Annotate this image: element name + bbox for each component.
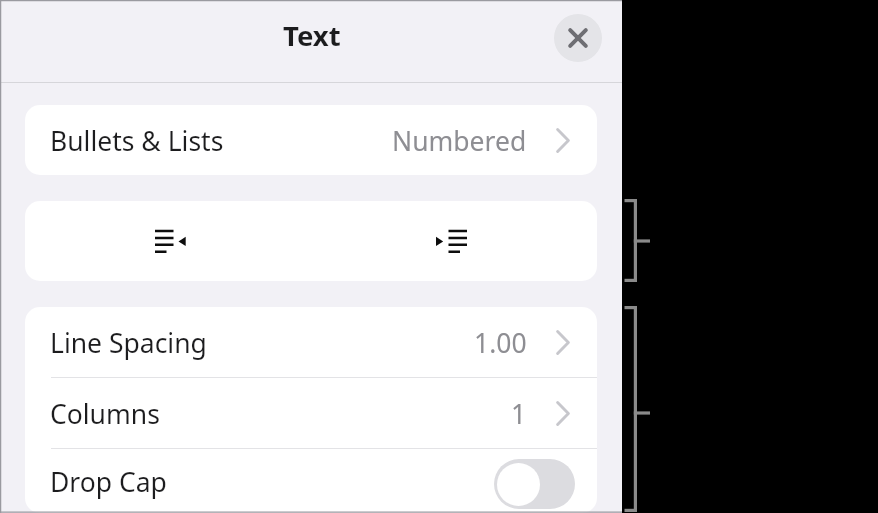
staticText: Columns [50, 396, 160, 432]
staticText: Drop Cap [50, 464, 167, 500]
button[interactable]: Bullets & Lists [25, 105, 597, 175]
button[interactable]: Increase indent [311, 201, 597, 281]
button[interactable]: Drop Cap [494, 459, 575, 509]
staticText: Line Spacing [50, 325, 207, 361]
button[interactable]: Close [554, 14, 602, 62]
staticText: Text [283, 17, 341, 54]
staticText: Numbered [392, 123, 527, 159]
staticText: 1.00 [474, 325, 527, 361]
staticText: Bullets & Lists [50, 123, 224, 159]
button[interactable]: Decrease indent [25, 201, 311, 281]
button[interactable]: Drop Cap [25, 446, 597, 513]
staticText: 1 [511, 396, 527, 432]
button[interactable]: Columns [25, 378, 597, 448]
button[interactable]: Line Spacing [25, 307, 597, 377]
